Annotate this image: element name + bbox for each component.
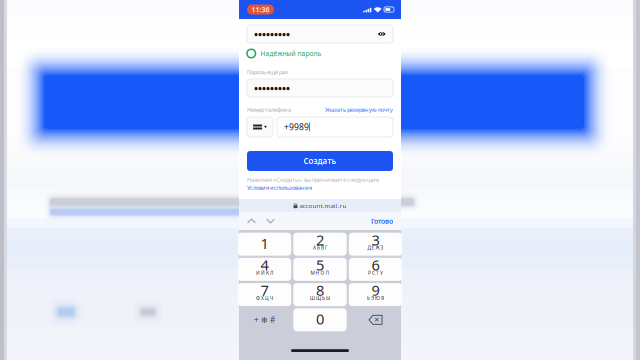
- staticText: 3: [371, 230, 379, 250]
- staticText: account.mail.ru: [299, 201, 346, 210]
- staticText: •••••••••: [254, 81, 290, 95]
- staticText: Условия использования: [247, 184, 312, 191]
- button[interactable]: 3: [349, 233, 402, 256]
- button[interactable]: Следующее поле: [264, 212, 277, 230]
- staticText: •••••••••: [254, 27, 290, 41]
- staticText: + ✻ #: [254, 314, 275, 325]
- staticText: Д Е Ж З: [367, 244, 383, 251]
- staticText: Р С Т У: [368, 270, 383, 276]
- button[interactable]: Создать: [247, 151, 393, 171]
- staticText: 2: [316, 230, 324, 250]
- staticText: А Б В Г: [313, 244, 327, 251]
- staticText: Ф Х Ц Ч: [256, 295, 273, 301]
- staticText: 0: [316, 309, 324, 329]
- button[interactable]: Готово: [371, 216, 393, 226]
- button[interactable]: 6: [349, 258, 402, 281]
- button[interactable]: 2: [293, 233, 347, 256]
- button[interactable]: Предыдущее поле: [245, 212, 258, 230]
- button[interactable]: account.mail.ru: [239, 199, 401, 212]
- staticText: Нажимая «Создать», вы принимаете следующ…: [247, 176, 379, 183]
- button[interactable]: 0: [293, 308, 347, 331]
- button[interactable]: 5: [293, 258, 347, 281]
- button[interactable]: Символы: [238, 308, 291, 331]
- button[interactable]: Указать резервную почту: [325, 106, 393, 113]
- staticText: Пароль ещё раз: [247, 68, 288, 76]
- button[interactable]: 4: [238, 258, 291, 281]
- button[interactable]: 8: [293, 283, 347, 306]
- staticText: И Й К Л: [256, 270, 273, 276]
- button[interactable]: Показать пароль: [378, 30, 386, 38]
- staticText: 5: [316, 255, 324, 275]
- staticText: 1: [260, 233, 268, 253]
- button[interactable]: Удалить: [349, 308, 402, 331]
- button[interactable]: Выбрать страну: [247, 117, 273, 137]
- staticText: 7: [260, 280, 268, 300]
- staticText: М Н О П: [310, 270, 329, 276]
- button[interactable]: 1: [238, 233, 291, 256]
- button[interactable]: Условия использования: [247, 184, 393, 191]
- staticText: 11:36: [251, 5, 269, 14]
- staticText: Номер телефона: [247, 106, 291, 113]
- staticText: Ь Э Ю Я: [367, 295, 384, 301]
- staticText: 8: [316, 280, 324, 300]
- button[interactable]: 9: [349, 283, 402, 306]
- staticText: ✕: [374, 316, 380, 324]
- staticText: 4: [260, 255, 268, 275]
- staticText: Надёжный пароль: [260, 49, 321, 58]
- staticText: 9: [371, 280, 379, 300]
- staticText: +9989: [284, 121, 309, 133]
- staticText: Ш Щ Ь Ы: [310, 295, 330, 301]
- staticText: Готово: [371, 216, 393, 226]
- staticText: 6: [371, 255, 379, 275]
- staticText: Указать резервную почту: [325, 106, 393, 113]
- button[interactable]: 7: [238, 283, 291, 306]
- staticText: Создать: [303, 156, 336, 166]
